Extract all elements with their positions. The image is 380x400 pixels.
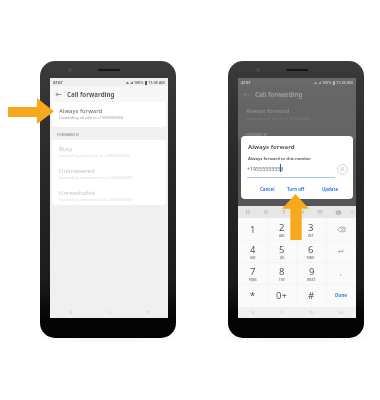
staticText: WXYZ	[307, 278, 316, 282]
staticText: ABC	[279, 234, 285, 238]
button[interactable]: Always forward	[52, 102, 166, 127]
button[interactable]: Navigate up	[238, 86, 255, 102]
button[interactable]: 4	[238, 240, 267, 262]
staticText: 2	[279, 221, 285, 234]
button[interactable]: Keyboard tool	[311, 206, 329, 218]
staticText: Forwarding unreachable to +19555555558	[59, 197, 133, 202]
other: New line	[326, 240, 356, 262]
staticText: Unanswered	[59, 167, 95, 175]
staticText: DEF	[308, 234, 314, 238]
button[interactable]: Busy	[52, 140, 166, 162]
button[interactable]: Keyboard tool	[238, 206, 257, 218]
button[interactable]: 6	[296, 240, 326, 262]
button[interactable]: *	[238, 284, 267, 306]
staticText: Done	[335, 292, 347, 298]
staticText: Forwarding all calls to +19555555558	[59, 115, 124, 120]
staticText: 8	[279, 265, 285, 278]
staticText: ,	[340, 268, 342, 278]
staticText: 7	[250, 265, 256, 278]
staticText: Forwarding all calls to +19555555558	[246, 116, 311, 121]
staticText: 11:38 AM	[336, 80, 353, 85]
staticText: Call forwarding	[67, 90, 115, 98]
button[interactable]: #	[296, 284, 326, 306]
staticText: Always forward	[246, 107, 290, 115]
button[interactable]: Hide keyboard	[326, 307, 356, 318]
button[interactable]: 3	[296, 218, 326, 240]
staticText: Unreachable	[59, 189, 95, 197]
staticText: Turn off	[287, 186, 305, 192]
staticText: MNO	[307, 256, 315, 260]
other: Backspace	[326, 218, 356, 240]
button[interactable]: Unanswered	[52, 162, 166, 184]
staticText: JKL	[280, 256, 285, 260]
button[interactable]: 0+	[267, 284, 296, 306]
staticText: Always forward	[248, 143, 295, 151]
button[interactable]: Unreachable	[52, 184, 166, 205]
button[interactable]: 8	[267, 262, 296, 284]
staticText: Update	[322, 186, 339, 192]
button[interactable]: Navigate up	[50, 86, 67, 102]
staticText: 5	[279, 243, 285, 256]
staticText: 0+	[276, 289, 287, 302]
staticText: Cancel	[260, 186, 275, 192]
staticText: Forwarding when busy to +19555555558	[59, 153, 130, 158]
staticText: 9	[309, 265, 315, 278]
button[interactable]: Update	[319, 184, 341, 194]
staticText: Always forward to this number	[248, 156, 312, 162]
staticText: Forwarding unanswered to +19555555558	[59, 175, 133, 180]
staticText: Busy	[59, 145, 73, 153]
button[interactable]: Backspace	[326, 218, 356, 240]
button[interactable]: 1	[238, 218, 267, 240]
staticText: GHI	[250, 256, 256, 260]
button[interactable]: More options	[347, 206, 356, 218]
staticText: #	[308, 289, 315, 302]
staticText: 1	[250, 223, 256, 236]
button[interactable]: Choose contact	[337, 164, 348, 175]
button[interactable]: Keyboard tool	[257, 206, 275, 218]
staticText: 100%	[134, 80, 144, 85]
staticText: 11:38 AM	[148, 80, 165, 85]
staticText: FORWARD IF	[245, 132, 268, 137]
button[interactable]: New line	[326, 240, 356, 262]
staticText: 3	[308, 221, 314, 234]
button[interactable]: ,	[326, 262, 356, 284]
staticText: FORWARD IF	[57, 132, 80, 137]
button[interactable]: Keyboard tool	[293, 206, 311, 218]
staticText: AT&T	[53, 80, 63, 85]
button[interactable]: Turn off	[285, 184, 307, 194]
button[interactable]: Insert image	[329, 206, 347, 218]
button[interactable]: 5	[267, 240, 296, 262]
staticText: 4	[250, 243, 256, 256]
staticText: Always forward	[59, 107, 103, 115]
staticText: 100%	[322, 80, 332, 85]
button[interactable]: Done	[326, 284, 356, 306]
staticText: *	[250, 289, 256, 302]
staticText: Call forwarding	[255, 90, 303, 98]
staticText: TUV	[279, 278, 285, 282]
staticText: PQRS	[249, 278, 257, 282]
button[interactable]: 2	[267, 218, 296, 240]
staticText: +19555555558	[247, 165, 284, 172]
button[interactable]: 7	[238, 262, 267, 284]
button[interactable]: Keyboard tool	[275, 206, 293, 218]
button[interactable]: 9	[296, 262, 326, 284]
staticText: 6	[308, 243, 314, 256]
button[interactable]: Navigate up	[238, 86, 356, 102]
button[interactable]: Navigate up	[50, 86, 168, 102]
button[interactable]: Cancel	[256, 184, 278, 194]
staticText: AT&T	[241, 80, 251, 85]
